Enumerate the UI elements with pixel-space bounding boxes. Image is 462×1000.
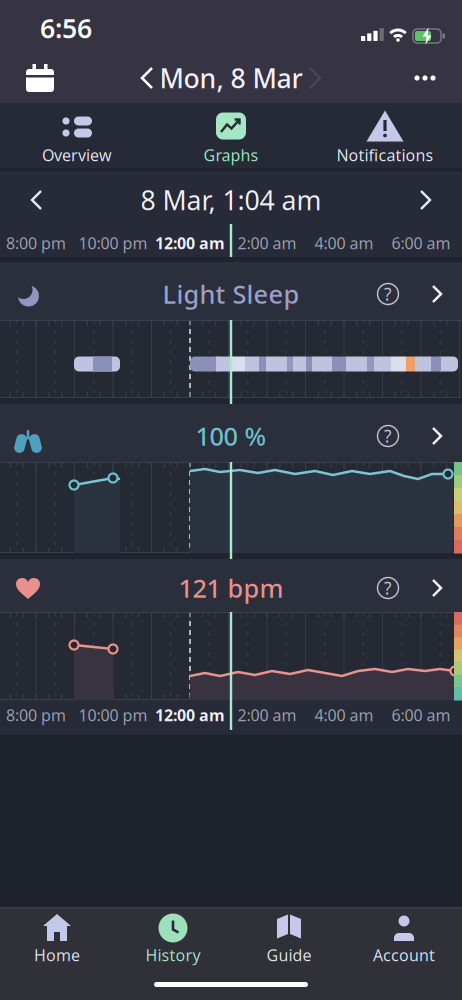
button[interactable]: Overview xyxy=(0,103,154,167)
button[interactable]: Graphs xyxy=(154,103,308,167)
staticText: Account xyxy=(373,944,435,966)
staticText: ? xyxy=(384,576,392,599)
staticText: 6:00 am xyxy=(391,704,450,726)
staticText: ? xyxy=(384,282,392,305)
staticText: 8 Mar, 1:04 am xyxy=(140,182,321,218)
button[interactable]: Info xyxy=(370,276,406,312)
staticText: 6:56 xyxy=(40,10,92,46)
staticText: Light Sleep xyxy=(162,277,299,311)
staticText: 6:00 am xyxy=(391,232,450,254)
button[interactable]: Account xyxy=(348,908,460,970)
button[interactable]: More options xyxy=(403,56,447,100)
button[interactable]: Notifications xyxy=(308,103,462,167)
button[interactable]: Guide xyxy=(233,908,345,970)
button[interactable]: Earlier xyxy=(14,178,58,222)
staticText: 121 bpm xyxy=(178,571,283,605)
staticText: ? xyxy=(384,424,392,447)
staticText: 8:00 pm xyxy=(6,704,66,726)
staticText: Overview xyxy=(42,144,112,166)
button[interactable]: Details xyxy=(419,418,455,454)
staticText: 12:00 am xyxy=(155,704,225,726)
staticText: 2:00 am xyxy=(237,232,296,254)
staticText: 100 % xyxy=(195,419,266,453)
staticText: Guide xyxy=(266,944,311,966)
staticText: 4:00 am xyxy=(314,704,373,726)
staticText: Mon, 8 Mar xyxy=(159,60,302,96)
button[interactable]: History xyxy=(117,908,229,970)
staticText: Graphs xyxy=(203,144,258,166)
staticText: 10:00 pm xyxy=(78,704,147,726)
button[interactable]: Details xyxy=(419,570,455,606)
button[interactable]: Previous day xyxy=(125,56,169,100)
button[interactable]: Details xyxy=(419,276,455,312)
staticText: 4:00 am xyxy=(314,232,373,254)
button[interactable]: Later xyxy=(404,178,448,222)
staticText: Home xyxy=(34,944,80,966)
staticText: History xyxy=(145,944,200,966)
staticText: 12:00 am xyxy=(155,232,225,254)
staticText: Notifications xyxy=(336,144,433,166)
button[interactable]: Info xyxy=(370,418,406,454)
button[interactable]: Info xyxy=(370,570,406,606)
button[interactable]: Calendar xyxy=(18,56,62,100)
button[interactable]: Home xyxy=(1,908,113,970)
staticText: 10:00 pm xyxy=(78,232,147,254)
staticText: 8:00 pm xyxy=(6,232,66,254)
staticText: 2:00 am xyxy=(237,704,296,726)
